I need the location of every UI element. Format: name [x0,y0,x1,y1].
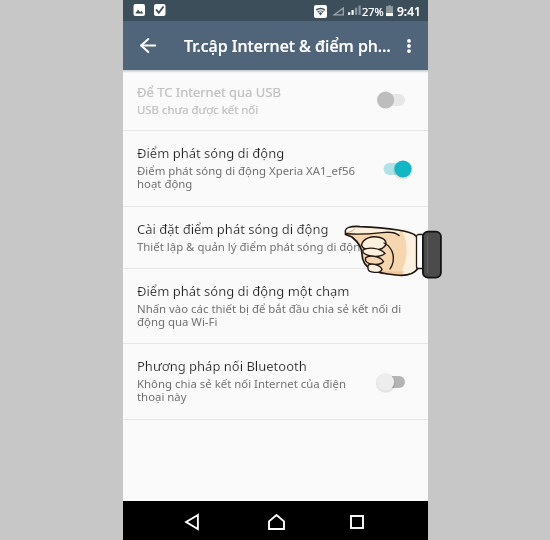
staticText: động qua Wi-Fi [137,314,218,330]
staticText: 27% [362,4,384,19]
button[interactable]: Home [262,508,290,536]
staticText: Nhấn vào các thiết bị để bắt đầu chia sẻ… [137,301,402,317]
staticText: 9:41 [397,3,421,19]
staticText: Phương pháp nối Bluetooth [137,357,307,375]
staticText: hoạt động [137,176,193,192]
staticText: Để TC Internet qua USB [137,83,281,101]
staticText: thoại này [137,389,187,405]
staticText: Điểm phát sóng di động một chạm [137,282,350,300]
button[interactable]: Back [178,508,206,536]
staticText: Tr.cập Internet & điểm ph… [184,35,391,57]
button[interactable]: Toggle setting [374,369,414,395]
staticText: Không chia sẻ kết nối Internet của điện [137,376,347,392]
button[interactable]: Toggle setting [374,156,414,182]
button[interactable]: Recent apps [343,508,371,536]
button[interactable]: Cài đặt điểm phát sóng di động [123,207,428,268]
button[interactable]: Điểm phát sóng di động [123,131,428,206]
staticText: Điểm phát sóng di động Xperia XA1_ef56 [137,163,355,179]
button[interactable]: Back [133,30,163,60]
staticText: Cài đặt điểm phát sóng di động [137,220,329,238]
button[interactable]: More options [394,31,424,61]
button[interactable]: Toggle setting [374,87,414,113]
button[interactable]: Phương pháp nối Bluetooth [123,344,428,419]
button[interactable]: Điểm phát sóng di động một chạm [123,269,428,343]
button[interactable]: Để TC Internet qua USB [123,70,428,130]
staticText: Thiết lập & quản lý điểm phát sóng di độ… [137,239,368,255]
staticText: USB chưa được kết nối [137,102,259,118]
staticText: Điểm phát sóng di động [137,144,285,162]
